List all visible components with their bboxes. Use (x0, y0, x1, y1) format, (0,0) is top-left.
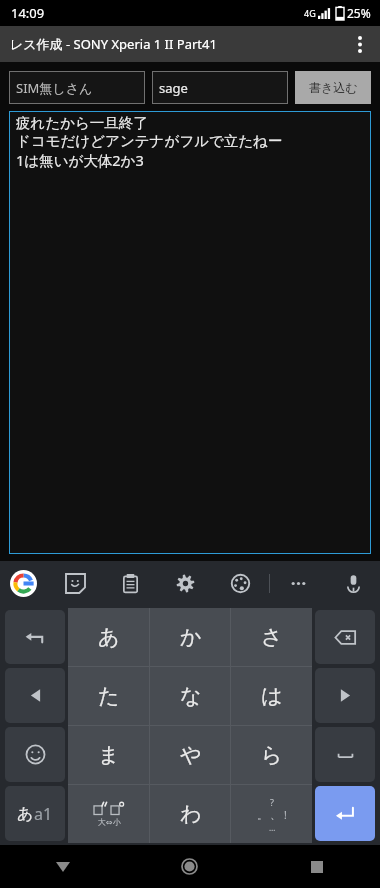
button[interactable]: Recents (253, 845, 380, 888)
button[interactable]: Delete (315, 610, 375, 664)
staticText: あ (17, 804, 34, 824)
button[interactable]: Emoji (5, 727, 65, 782)
button[interactable]: Voice input (337, 567, 370, 600)
button[interactable]: か (150, 608, 231, 666)
button[interactable]: SIM無しさん (9, 71, 145, 104)
staticText: 大⇔小 (98, 817, 121, 827)
staticText: 14:09 (11, 4, 45, 22)
button[interactable]: Clipboard (114, 567, 147, 600)
staticText: ら (261, 742, 283, 768)
staticText: 書き込む (309, 80, 358, 95)
button[interactable]: た (68, 667, 150, 725)
staticText: さ (261, 624, 283, 650)
button[interactable]: 大⇔小 (68, 785, 150, 843)
staticText: ? (270, 796, 274, 808)
staticText: a1 (34, 803, 53, 825)
staticText: ! (284, 808, 287, 822)
staticText: ドコモだけどアンテナがフルで立たねー (16, 132, 283, 150)
button[interactable]: さ (231, 608, 312, 666)
button[interactable]: Enter (315, 786, 375, 841)
button[interactable]: Back (0, 845, 126, 888)
staticText: わ (180, 801, 202, 827)
staticText: ま (98, 742, 120, 768)
staticText: や (180, 742, 202, 768)
button[interactable]: な (150, 667, 231, 725)
staticText: レス作成 - SONY Xperia 1 II Part41 (10, 35, 217, 53)
button[interactable]: Cursor left (5, 668, 65, 723)
button[interactable]: 書き込む (295, 71, 371, 104)
staticText: 、 (270, 808, 281, 822)
button[interactable]: Settings (169, 567, 202, 600)
staticText: SIM無しさん (16, 79, 93, 97)
button[interactable]: sage (152, 71, 288, 104)
staticText: 25% (347, 5, 371, 21)
button[interactable]: あ (5, 786, 65, 841)
button[interactable]: More options (340, 26, 380, 62)
staticText: … (269, 822, 276, 833)
button[interactable]: ら (231, 726, 312, 784)
button[interactable]: ? (231, 785, 312, 843)
button[interactable]: More (282, 567, 315, 600)
button[interactable]: Undo (5, 610, 65, 664)
staticText: 。 (257, 808, 268, 822)
button[interactable]: Cursor right (315, 668, 375, 723)
button[interactable]: Theme (224, 567, 257, 600)
button[interactable]: は (231, 667, 312, 725)
button[interactable]: や (150, 726, 231, 784)
button[interactable]: あ (68, 608, 150, 666)
button[interactable]: Home (126, 845, 253, 888)
staticText: は (261, 683, 283, 709)
staticText: な (180, 683, 202, 709)
button[interactable]: Stickers (59, 567, 92, 600)
button[interactable]: ま (68, 726, 150, 784)
staticText: 4G (304, 7, 316, 19)
staticText: 疲れたから一旦終了 (16, 114, 148, 132)
staticText: あ (98, 624, 120, 650)
staticText: 1は無いが大体2か3 (16, 150, 144, 170)
button[interactable]: Space (315, 727, 375, 782)
staticText: た (98, 683, 120, 709)
button[interactable]: 疲れたから一旦終了 (9, 111, 371, 554)
button[interactable]: Google (10, 570, 37, 597)
staticText: か (180, 624, 202, 650)
button[interactable]: わ (150, 785, 231, 843)
staticText: sage (159, 79, 188, 97)
